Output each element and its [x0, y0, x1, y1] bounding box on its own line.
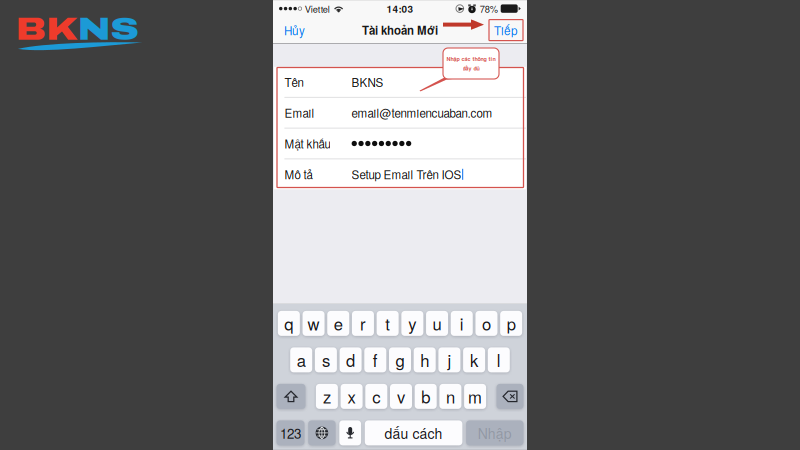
button[interactable]: Tên — [274, 67, 526, 97]
button[interactable]: k — [463, 347, 485, 372]
button[interactable]: l — [488, 347, 510, 372]
staticText: f — [373, 348, 378, 372]
staticText: u — [433, 311, 442, 335]
staticText: Tên — [284, 74, 303, 90]
button[interactable]: Hủy — [277, 18, 312, 43]
staticText: Email — [284, 104, 314, 121]
button[interactable]: Email — [274, 98, 526, 128]
button[interactable]: s — [315, 347, 337, 372]
staticText: Tiếp — [494, 22, 518, 38]
staticText: k — [470, 348, 478, 372]
button[interactable]: q — [278, 311, 300, 336]
staticText: Nhập các thông tin — [446, 55, 495, 63]
staticText: h — [420, 348, 429, 372]
button[interactable]: t — [377, 311, 399, 336]
button[interactable]: p — [500, 311, 522, 336]
staticText: K — [46, 12, 78, 46]
staticText: 123 — [280, 423, 301, 442]
staticText: e — [334, 311, 343, 335]
staticText: m — [468, 384, 482, 408]
button[interactable]: Shift — [276, 384, 305, 409]
staticText: l — [497, 348, 501, 372]
button[interactable]: o — [475, 311, 497, 336]
staticText: S — [110, 12, 138, 46]
button[interactable]: r — [352, 311, 374, 336]
staticText: t — [385, 311, 390, 335]
button[interactable]: u — [426, 311, 448, 336]
staticText: w — [308, 311, 320, 335]
staticText: s — [322, 348, 330, 372]
button[interactable]: v — [390, 384, 412, 409]
staticText: Setup Email Trên IOS — [352, 166, 462, 183]
button[interactable]: c — [365, 384, 387, 409]
button[interactable]: n — [439, 384, 461, 409]
button[interactable]: Mô tả — [274, 159, 526, 189]
button[interactable]: d — [340, 347, 362, 372]
staticText: i — [460, 311, 464, 335]
button[interactable]: g — [389, 347, 411, 372]
staticText: g — [395, 348, 404, 372]
button[interactable]: h — [414, 347, 436, 372]
staticText: Mật khẩu — [284, 135, 330, 152]
staticText: j — [447, 348, 451, 372]
staticText: n — [446, 384, 455, 408]
staticText: đầy đủ — [462, 64, 479, 72]
button[interactable]: i — [451, 311, 473, 336]
staticText: Hủy — [284, 22, 305, 38]
button[interactable]: w — [303, 311, 325, 336]
staticText: email@tenmiencuaban.com — [352, 104, 493, 121]
staticText: Viettel — [305, 2, 330, 15]
button[interactable]: 123 — [276, 420, 304, 445]
staticText: dấu cách — [385, 423, 443, 443]
button[interactable]: a — [290, 347, 312, 372]
button[interactable]: Tiếp — [489, 20, 523, 41]
button[interactable]: x — [341, 384, 363, 409]
staticText: r — [360, 311, 366, 335]
button[interactable]: f — [364, 347, 386, 372]
button[interactable]: m — [464, 384, 486, 409]
staticText: x — [348, 384, 356, 408]
button[interactable]: dấu cách — [365, 420, 462, 445]
staticText: y — [408, 311, 416, 335]
staticText: Nhập — [478, 423, 512, 443]
staticText: a — [297, 348, 306, 372]
staticText: 78% — [480, 2, 498, 15]
staticText: v — [397, 384, 405, 408]
button[interactable]: Delete — [496, 384, 523, 409]
button[interactable]: z — [316, 384, 338, 409]
button[interactable]: Dictation — [339, 420, 361, 445]
staticText: B — [16, 12, 46, 46]
button[interactable]: Next keyboard — [308, 420, 336, 445]
staticText: p — [507, 311, 516, 335]
staticText: 14:03 — [386, 1, 413, 16]
staticText: z — [323, 384, 331, 408]
staticText: o — [482, 311, 491, 335]
staticText: b — [421, 384, 430, 408]
staticText: BKNS — [352, 74, 384, 90]
staticText: Tài khoản Mới — [362, 22, 438, 38]
button[interactable]: Mật khẩu — [274, 128, 526, 158]
staticText: c — [372, 384, 380, 408]
button[interactable]: j — [438, 347, 460, 372]
button[interactable]: Nhập — [466, 420, 523, 445]
staticText: d — [346, 348, 355, 372]
staticText: Mô tả — [284, 166, 312, 183]
button[interactable]: y — [401, 311, 423, 336]
staticText: N — [78, 12, 110, 46]
staticText: q — [284, 311, 293, 335]
button[interactable]: b — [415, 384, 437, 409]
button[interactable]: e — [327, 311, 349, 336]
